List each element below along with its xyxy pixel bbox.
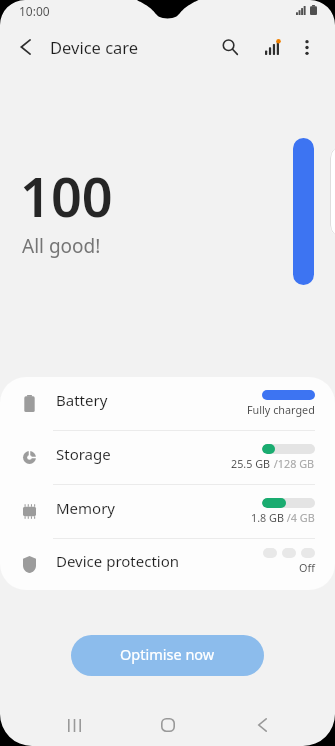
button[interactable]: Search — [211, 27, 249, 67]
staticText: Storage — [56, 444, 111, 464]
button[interactable]: Battery — [0, 377, 335, 430]
staticText: 100 — [20, 159, 113, 233]
staticText: 25.5 GB — [231, 456, 271, 471]
staticText: Device care — [50, 36, 139, 58]
button[interactable]: Optimise now — [71, 635, 264, 676]
button[interactable]: Back — [234, 702, 290, 746]
staticText: 10:00 — [19, 3, 50, 19]
staticText: Fully charged — [247, 402, 315, 417]
button[interactable]: Device protection — [0, 539, 335, 590]
staticText: Battery — [56, 390, 108, 410]
staticText: 1.8 GB — [251, 510, 284, 525]
staticText: Memory — [56, 498, 116, 518]
button[interactable]: Usage statistics — [253, 27, 291, 67]
staticText: Device protection — [56, 551, 180, 571]
button[interactable]: Recent apps — [46, 702, 102, 746]
button[interactable]: Back — [8, 30, 42, 64]
button[interactable]: More options — [288, 27, 326, 67]
button[interactable]: Memory — [0, 485, 335, 538]
staticText: Optimise now — [120, 644, 215, 664]
staticText: /128 GB — [271, 456, 315, 471]
staticText: All good! — [22, 233, 101, 259]
staticText: /4 GB — [284, 510, 315, 525]
button[interactable]: Home — [140, 702, 196, 746]
staticText: Off — [299, 560, 315, 575]
button[interactable]: Storage — [0, 431, 335, 484]
